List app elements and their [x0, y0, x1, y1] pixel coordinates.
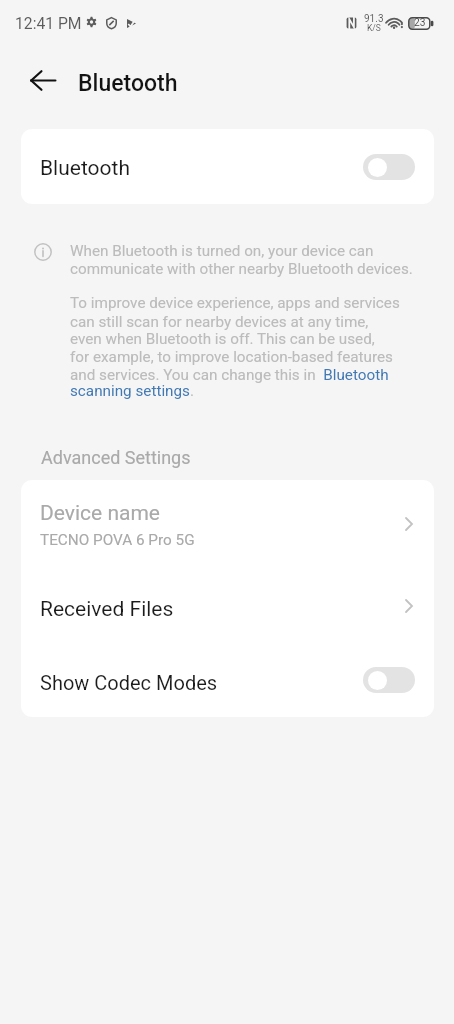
staticText: When Bluetooth is turned on, your device…	[70, 242, 374, 260]
button[interactable]: Device name	[21, 480, 434, 574]
button[interactable]: Bluetooth	[21, 129, 434, 204]
staticText: Received Files	[40, 597, 174, 622]
staticText: K/S	[367, 23, 381, 33]
staticText: 91.3	[364, 13, 384, 25]
staticText: for example, to improve location-based f…	[70, 348, 393, 366]
staticText: and services. You can change this in Blu…	[70, 366, 389, 384]
staticText: Bluetooth	[78, 70, 178, 97]
staticText: TECNO POVA 6 Pro 5G	[40, 531, 195, 549]
staticText: scanning settings.	[70, 382, 194, 400]
staticText: Show Codec Modes	[40, 671, 218, 694]
staticText: even when Bluetooth is off. This can be …	[70, 330, 375, 348]
staticText: Bluetooth	[40, 156, 130, 181]
button[interactable]: Back	[23, 60, 63, 100]
button[interactable]: Received Files	[21, 566, 434, 641]
button[interactable]: Show Codec Modes	[21, 641, 434, 717]
staticText: Device name	[40, 501, 160, 526]
button[interactable]: Bluetooth toggle	[363, 154, 415, 180]
staticText: 12:41 PM	[15, 14, 82, 32]
staticText: 23	[414, 17, 426, 29]
staticText: can still scan for nearby devices at any…	[70, 313, 369, 331]
staticText: communicate with other nearby Bluetooth …	[70, 260, 413, 278]
button[interactable]: Show codec modes toggle	[363, 667, 415, 693]
staticText: To improve device experience, apps and s…	[70, 294, 400, 312]
staticText: Advanced Settings	[41, 447, 191, 468]
